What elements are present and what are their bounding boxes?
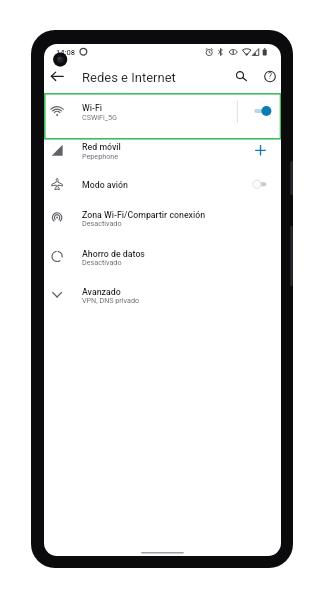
staticText: Desactivado [82,219,122,227]
staticText: Pepephone [82,152,119,160]
button[interactable]: Add network [247,142,269,162]
staticText: Modo avión [82,180,128,190]
button[interactable]: Search [228,63,254,89]
staticText: ? [268,71,273,81]
button[interactable] [44,91,281,131]
staticText: Ahorro de datos [82,249,145,259]
button[interactable]: Wi-Fi on/off [249,103,275,119]
staticText: Avanzado [82,287,121,297]
button[interactable]: Back [44,62,71,89]
staticText: Desactivado [82,258,122,266]
button[interactable] [44,275,281,314]
button[interactable] [44,131,281,171]
button[interactable]: Airplane mode on/off [249,176,275,192]
staticText: VPN, DNS privado [82,296,140,304]
button[interactable] [44,237,281,276]
staticText: Redes e Internet [82,70,176,85]
staticText: Red móvil [82,142,121,152]
staticText: Zona Wi-Fi/Compartir conexión [82,210,206,220]
staticText: Wi-Fi [82,103,103,113]
button[interactable] [44,170,281,198]
button[interactable]: Help [256,63,281,89]
staticText: 14:08 [56,48,76,57]
button[interactable] [44,198,281,237]
staticText: CSWiFi_5G [82,113,117,121]
